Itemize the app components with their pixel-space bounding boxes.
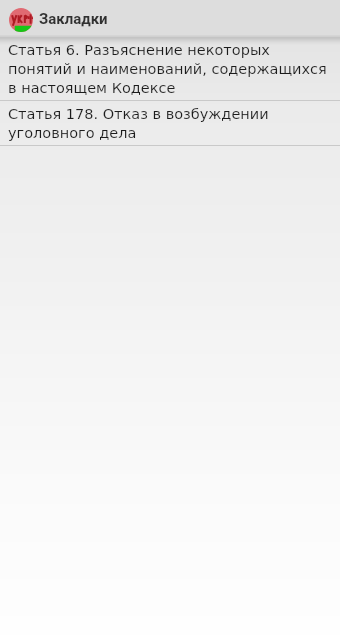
staticText: Закладки bbox=[39, 10, 108, 28]
button[interactable]: Закладки — домой bbox=[0, 0, 340, 35]
button[interactable]: Статья 6. Разъяснение некоторых понятий … bbox=[0, 37, 340, 100]
button[interactable]: Статья 178. Отказ в возбуждении уголовно… bbox=[0, 101, 340, 145]
staticText: Статья 178. Отказ в возбуждении уголовно… bbox=[8, 104, 333, 142]
staticText: Статья 6. Разъяснение некоторых понятий … bbox=[8, 40, 333, 97]
